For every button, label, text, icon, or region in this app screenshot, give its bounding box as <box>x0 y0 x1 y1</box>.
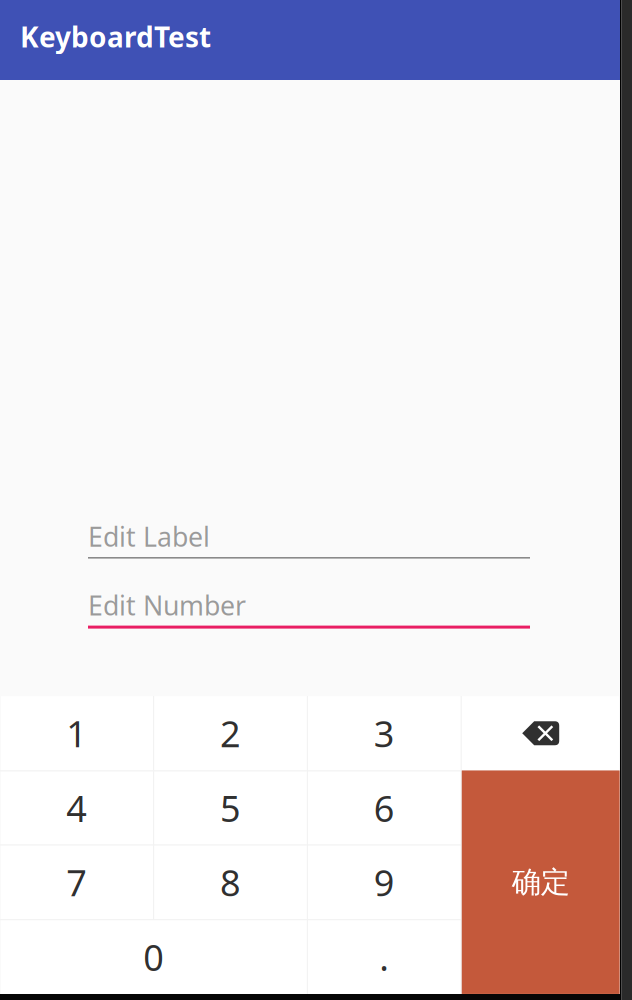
staticText: 9 <box>374 858 395 906</box>
button[interactable]: 6 <box>308 771 461 844</box>
button[interactable]: 确定 <box>462 770 620 994</box>
staticText: 2 <box>220 709 241 757</box>
button[interactable]: Edit Number <box>88 585 530 629</box>
staticText: 确定 <box>512 864 570 900</box>
staticText: 7 <box>66 858 87 906</box>
button[interactable]: Edit Label <box>88 516 530 559</box>
staticText: Edit Label <box>88 519 210 554</box>
staticText: 0 <box>143 933 164 981</box>
staticText: 8 <box>220 858 241 906</box>
button[interactable]: 0 <box>0 920 307 994</box>
button[interactable]: 4 <box>0 771 153 844</box>
staticText: Edit Number <box>88 587 246 623</box>
button[interactable]: . <box>308 920 461 994</box>
button[interactable]: 5 <box>154 771 307 844</box>
button[interactable]: 3 <box>308 696 461 770</box>
button[interactable]: 8 <box>154 845 307 919</box>
button[interactable]: 2 <box>154 696 307 770</box>
staticText: 6 <box>374 784 395 832</box>
staticText: KeyboardTest <box>20 18 211 55</box>
staticText: 4 <box>66 784 87 832</box>
button[interactable]: Backspace <box>462 696 620 770</box>
button[interactable]: 9 <box>308 845 461 919</box>
button[interactable]: 7 <box>0 845 153 919</box>
staticText: 5 <box>220 784 241 832</box>
button[interactable]: 1 <box>0 696 153 770</box>
staticText: . <box>379 933 389 981</box>
staticText: 3 <box>374 709 395 757</box>
staticText: 1 <box>66 709 87 757</box>
